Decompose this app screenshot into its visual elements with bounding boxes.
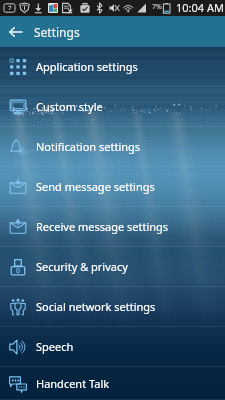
staticText: Settings — [34, 24, 80, 40]
staticText: Receive message settings — [36, 219, 169, 234]
button[interactable]: Send message settings — [0, 167, 225, 207]
staticText: Notification settings — [36, 139, 141, 154]
staticText: Application settings — [36, 59, 138, 74]
button[interactable]: Speech — [0, 327, 225, 367]
button[interactable]: Back — [2, 18, 30, 46]
button[interactable]: Social network settings — [0, 287, 225, 327]
staticText: Custom style — [36, 99, 103, 114]
staticText: 7% — [152, 2, 162, 12]
button[interactable]: Handcent Talk — [0, 367, 225, 400]
button[interactable]: Notification settings — [0, 127, 225, 167]
button[interactable]: Security & privacy — [0, 247, 225, 287]
staticText: Handcent Talk — [36, 376, 110, 391]
staticText: Speech — [36, 339, 74, 354]
staticText: Security & privacy — [36, 259, 128, 274]
staticText: Send message settings — [36, 179, 155, 194]
staticText: 10:04 AM — [176, 0, 224, 15]
button[interactable]: Receive message settings — [0, 207, 225, 247]
staticText: Social network settings — [36, 299, 156, 314]
button[interactable]: Application settings — [0, 47, 225, 87]
button[interactable]: Custom style — [0, 87, 225, 127]
